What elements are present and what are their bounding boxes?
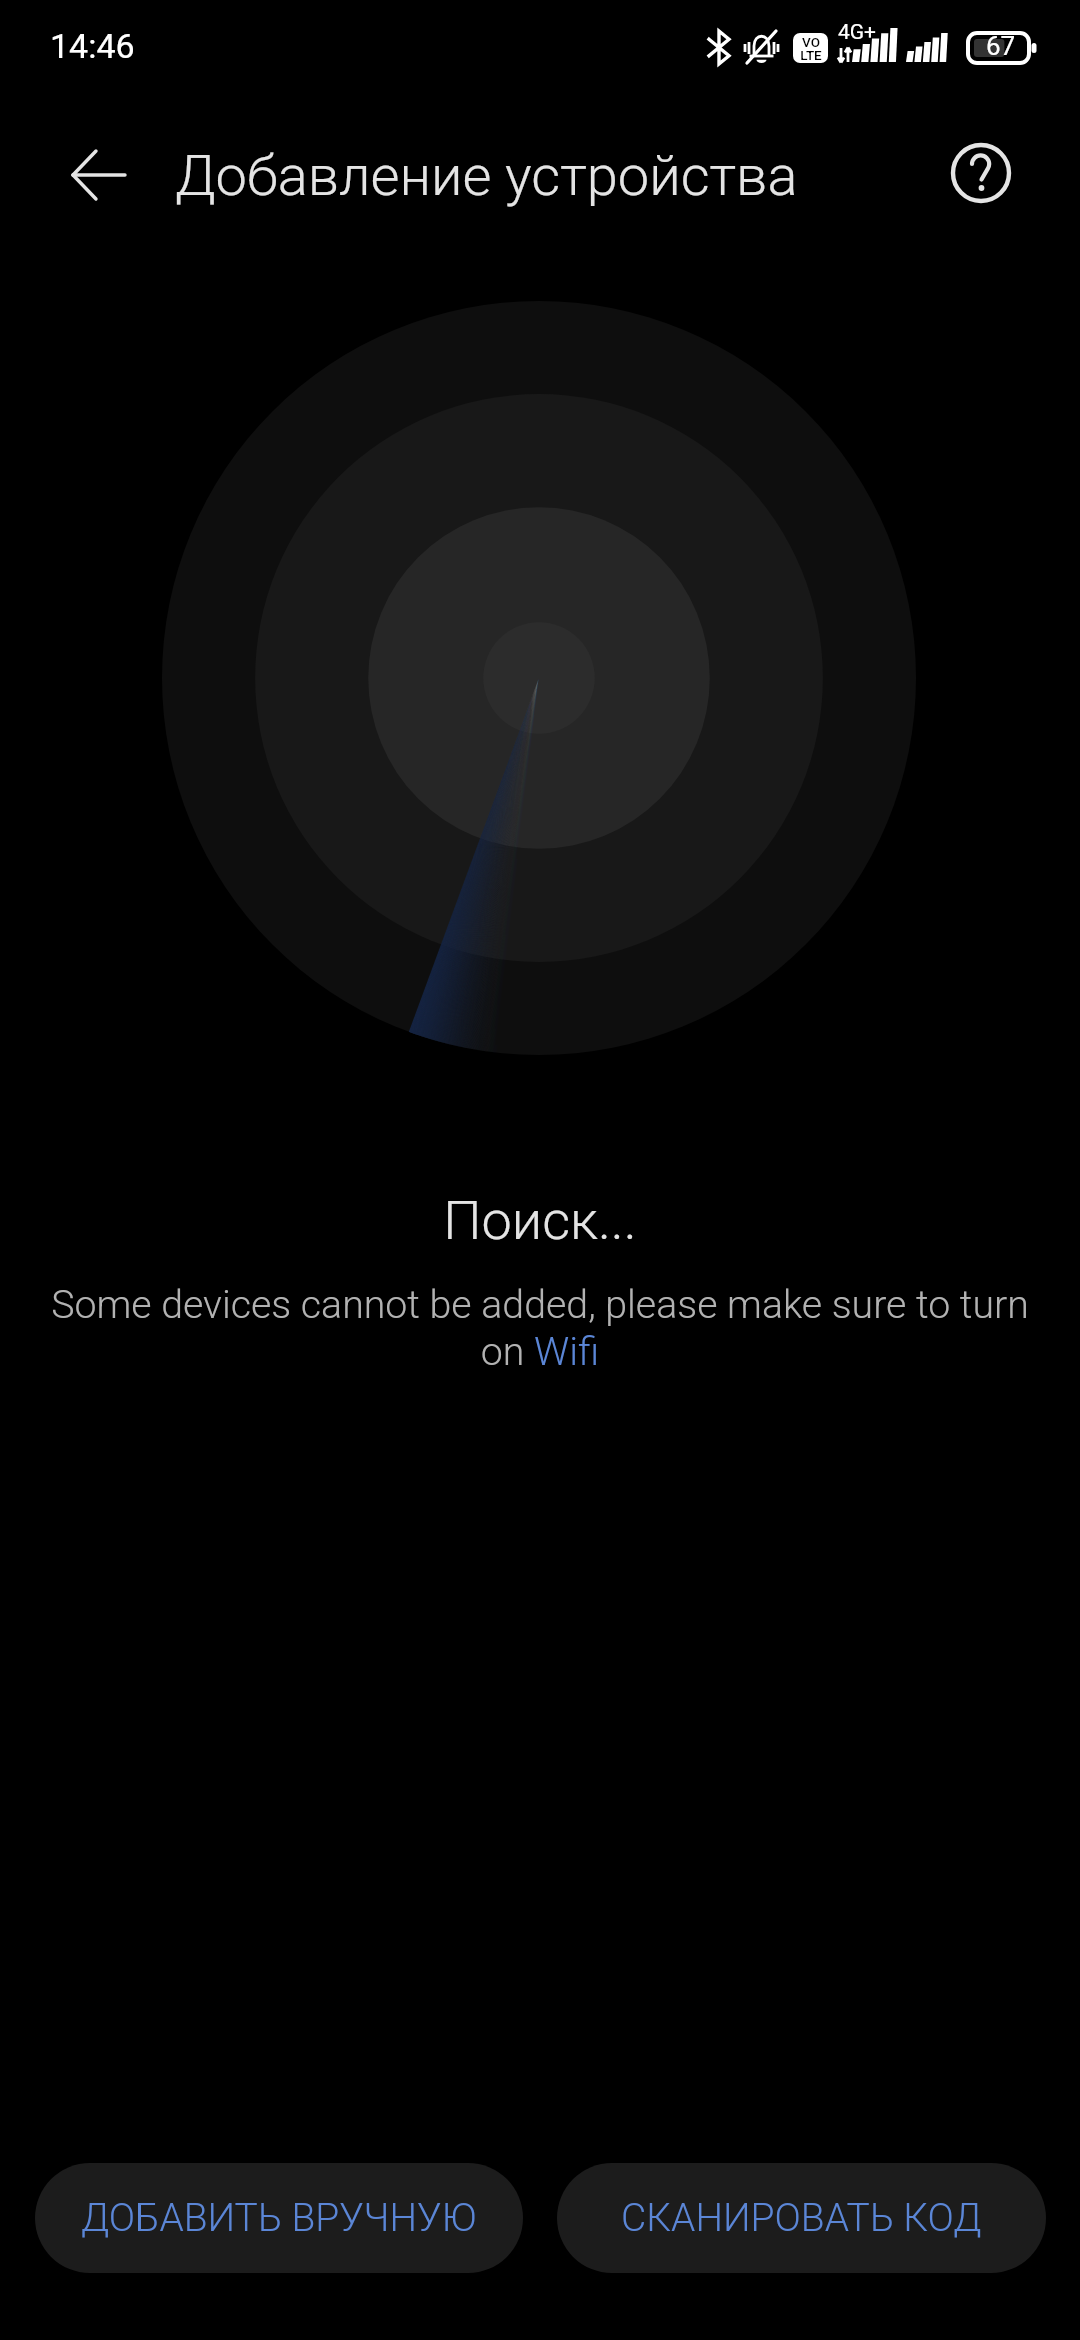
staticText: Поиск... xyxy=(0,1189,1080,1252)
staticText: СКАНИРОВАТЬ КОД xyxy=(621,2195,982,2241)
staticText: Some devices cannot be added, please mak… xyxy=(44,1282,1036,1374)
staticText: Добавление устройства xyxy=(175,143,798,209)
staticText: VO LTE xyxy=(800,34,822,63)
button[interactable]: СКАНИРОВАТЬ КОД xyxy=(557,2163,1046,2273)
button[interactable]: Back xyxy=(43,119,155,231)
button[interactable]: Help xyxy=(925,117,1037,229)
staticText: 67 xyxy=(986,31,1016,61)
staticText: 14:46 xyxy=(50,26,135,66)
staticText: ДОБАВИТЬ ВРУЧНУЮ xyxy=(81,2195,477,2241)
button[interactable]: ДОБАВИТЬ ВРУЧНУЮ xyxy=(35,2163,523,2273)
staticText: 4G+ xyxy=(838,20,877,45)
